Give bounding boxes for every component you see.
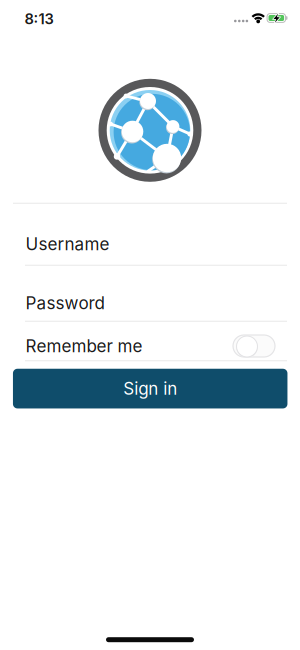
button[interactable]: Remember me xyxy=(233,335,275,357)
staticText: Remember me xyxy=(25,336,142,356)
staticText: 8:13 xyxy=(24,10,53,28)
button[interactable]: Sign in xyxy=(13,369,287,408)
staticText: Sign in xyxy=(123,378,177,399)
button[interactable]: Username xyxy=(13,204,287,265)
button[interactable]: Password xyxy=(13,265,287,321)
staticText: Password xyxy=(25,293,104,313)
staticText: Username xyxy=(25,234,109,254)
